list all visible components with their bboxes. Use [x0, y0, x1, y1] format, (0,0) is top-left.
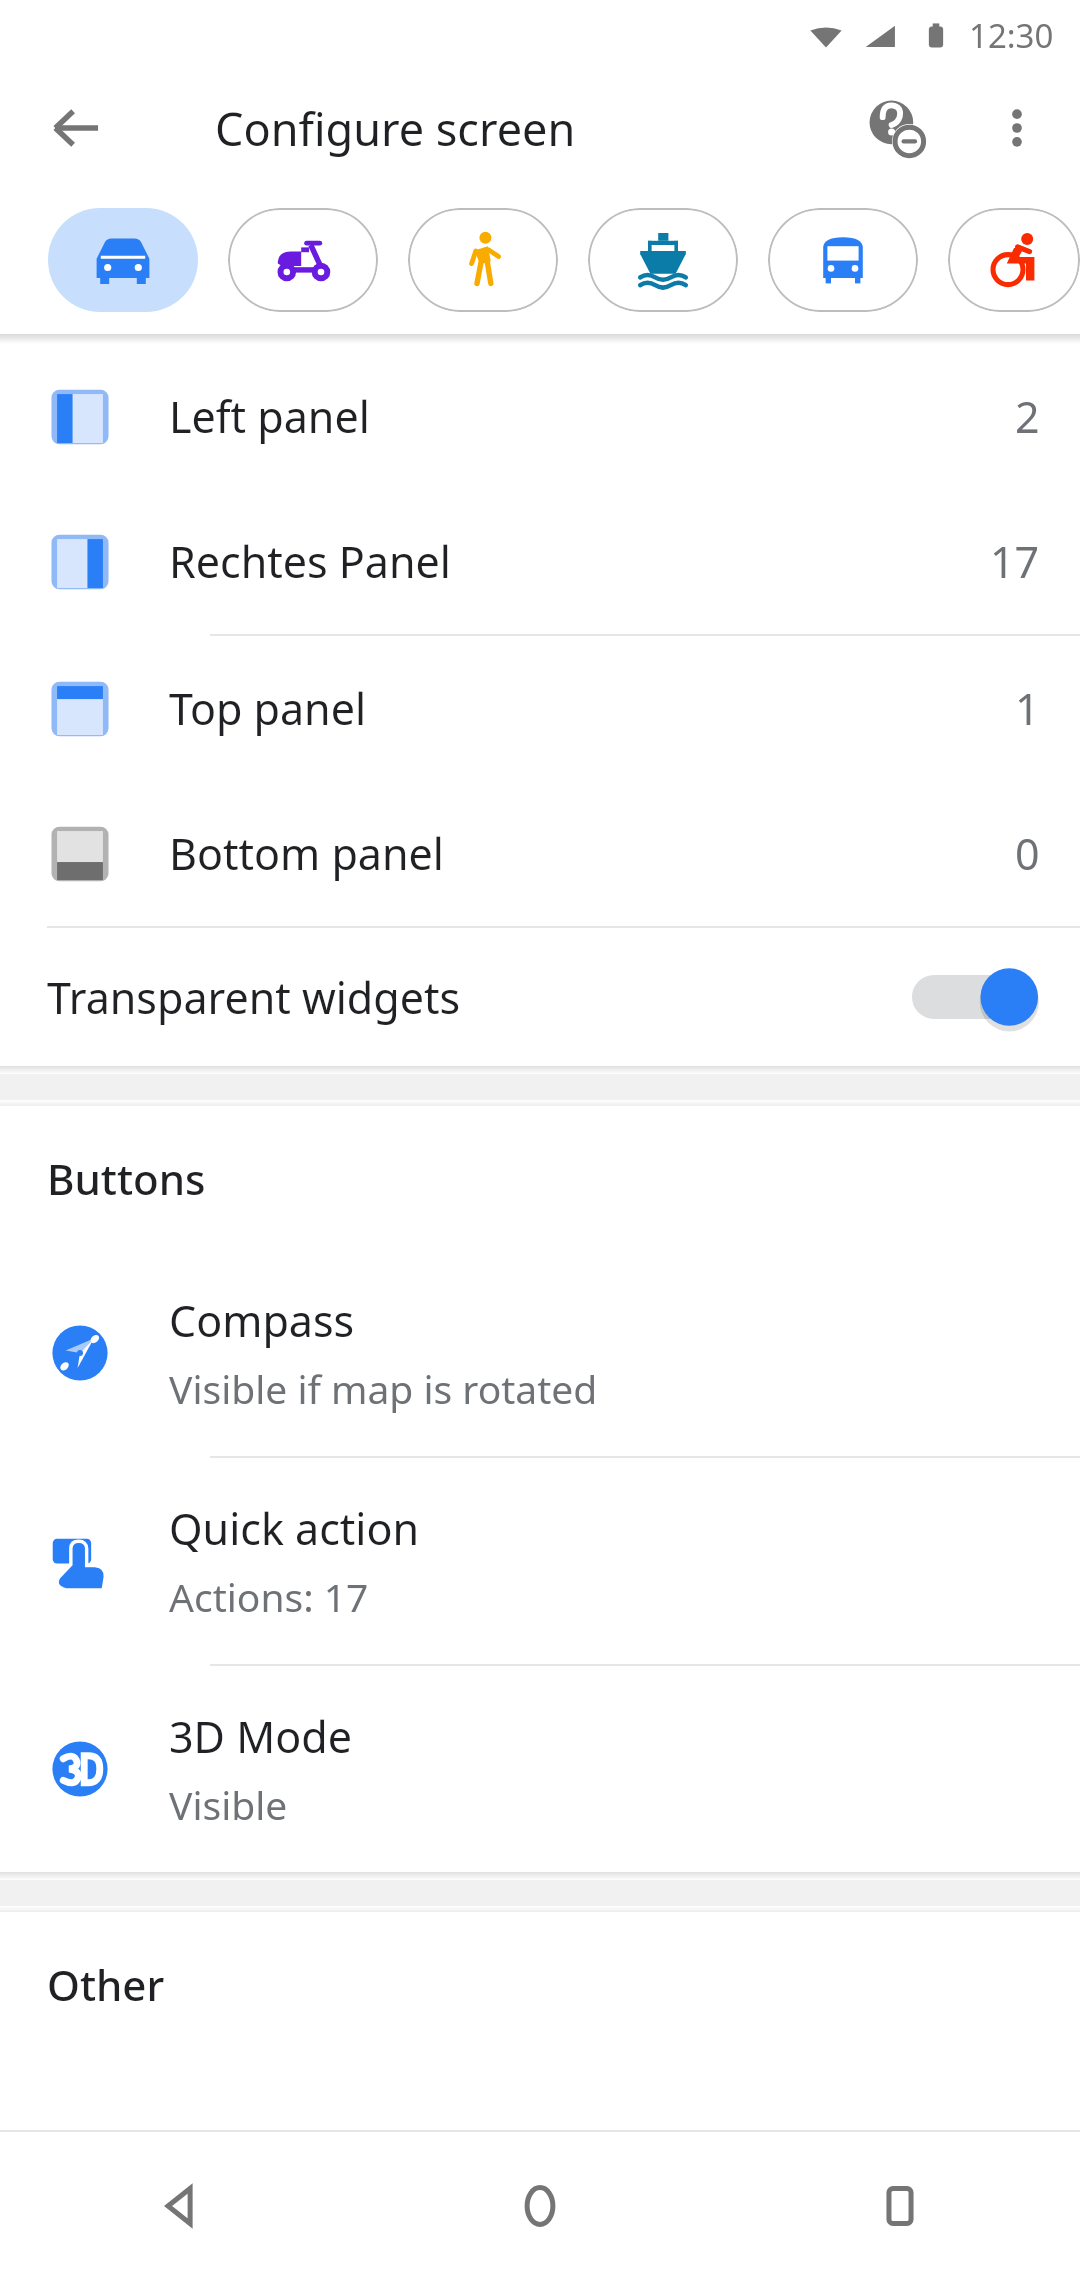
staticText: Visible [169, 1778, 288, 1831]
button[interactable]: Help [854, 85, 940, 171]
staticText: Rechtes Panel [169, 532, 451, 591]
button[interactable]: Car [48, 208, 198, 312]
button[interactable]: Transparent widgets, on [912, 957, 1040, 1037]
staticText: 12:30 [969, 13, 1054, 58]
button[interactable]: 3D Mode [0, 1666, 1080, 1872]
staticText: Actions: 17 [169, 1570, 369, 1623]
button[interactable]: Walk [408, 208, 558, 312]
staticText: Other [47, 1956, 165, 2013]
button[interactable]: More options [974, 85, 1060, 171]
staticText: Visible if map is rotated [169, 1362, 598, 1415]
button[interactable]: Back [38, 90, 114, 166]
staticText: Top panel [169, 679, 367, 738]
staticText: 3D Mode [169, 1707, 352, 1766]
staticText: 1 [1015, 679, 1040, 738]
button[interactable]: Compass [0, 1250, 1080, 1456]
staticText: Left panel [169, 387, 370, 446]
button[interactable]: Back [0, 2132, 360, 2280]
staticText: 2 [1015, 387, 1040, 446]
button[interactable]: Rechtes Panel [0, 489, 1080, 634]
button[interactable]: Scooter [228, 208, 378, 312]
button[interactable]: Ferry [588, 208, 738, 312]
staticText: Quick action [169, 1499, 420, 1558]
staticText: Compass [169, 1291, 355, 1350]
button[interactable]: Bus [768, 208, 918, 312]
staticText: Transparent widgets [47, 968, 461, 1027]
button[interactable]: Home [360, 2132, 720, 2280]
button[interactable]: Quick action [0, 1458, 1080, 1664]
staticText: Buttons [47, 1150, 206, 1207]
staticText: 17 [990, 532, 1040, 591]
button[interactable]: Recents [720, 2132, 1080, 2280]
staticText: Bottom panel [169, 824, 444, 883]
button[interactable]: Bottom panel [0, 781, 1080, 926]
staticText: 0 [1015, 824, 1040, 883]
staticText: Configure screen [215, 98, 576, 159]
button[interactable]: Left panel [0, 344, 1080, 489]
button[interactable]: Transparent widgets [0, 928, 1080, 1066]
button[interactable]: Top panel [0, 636, 1080, 781]
button[interactable]: Accessible [948, 208, 1080, 312]
